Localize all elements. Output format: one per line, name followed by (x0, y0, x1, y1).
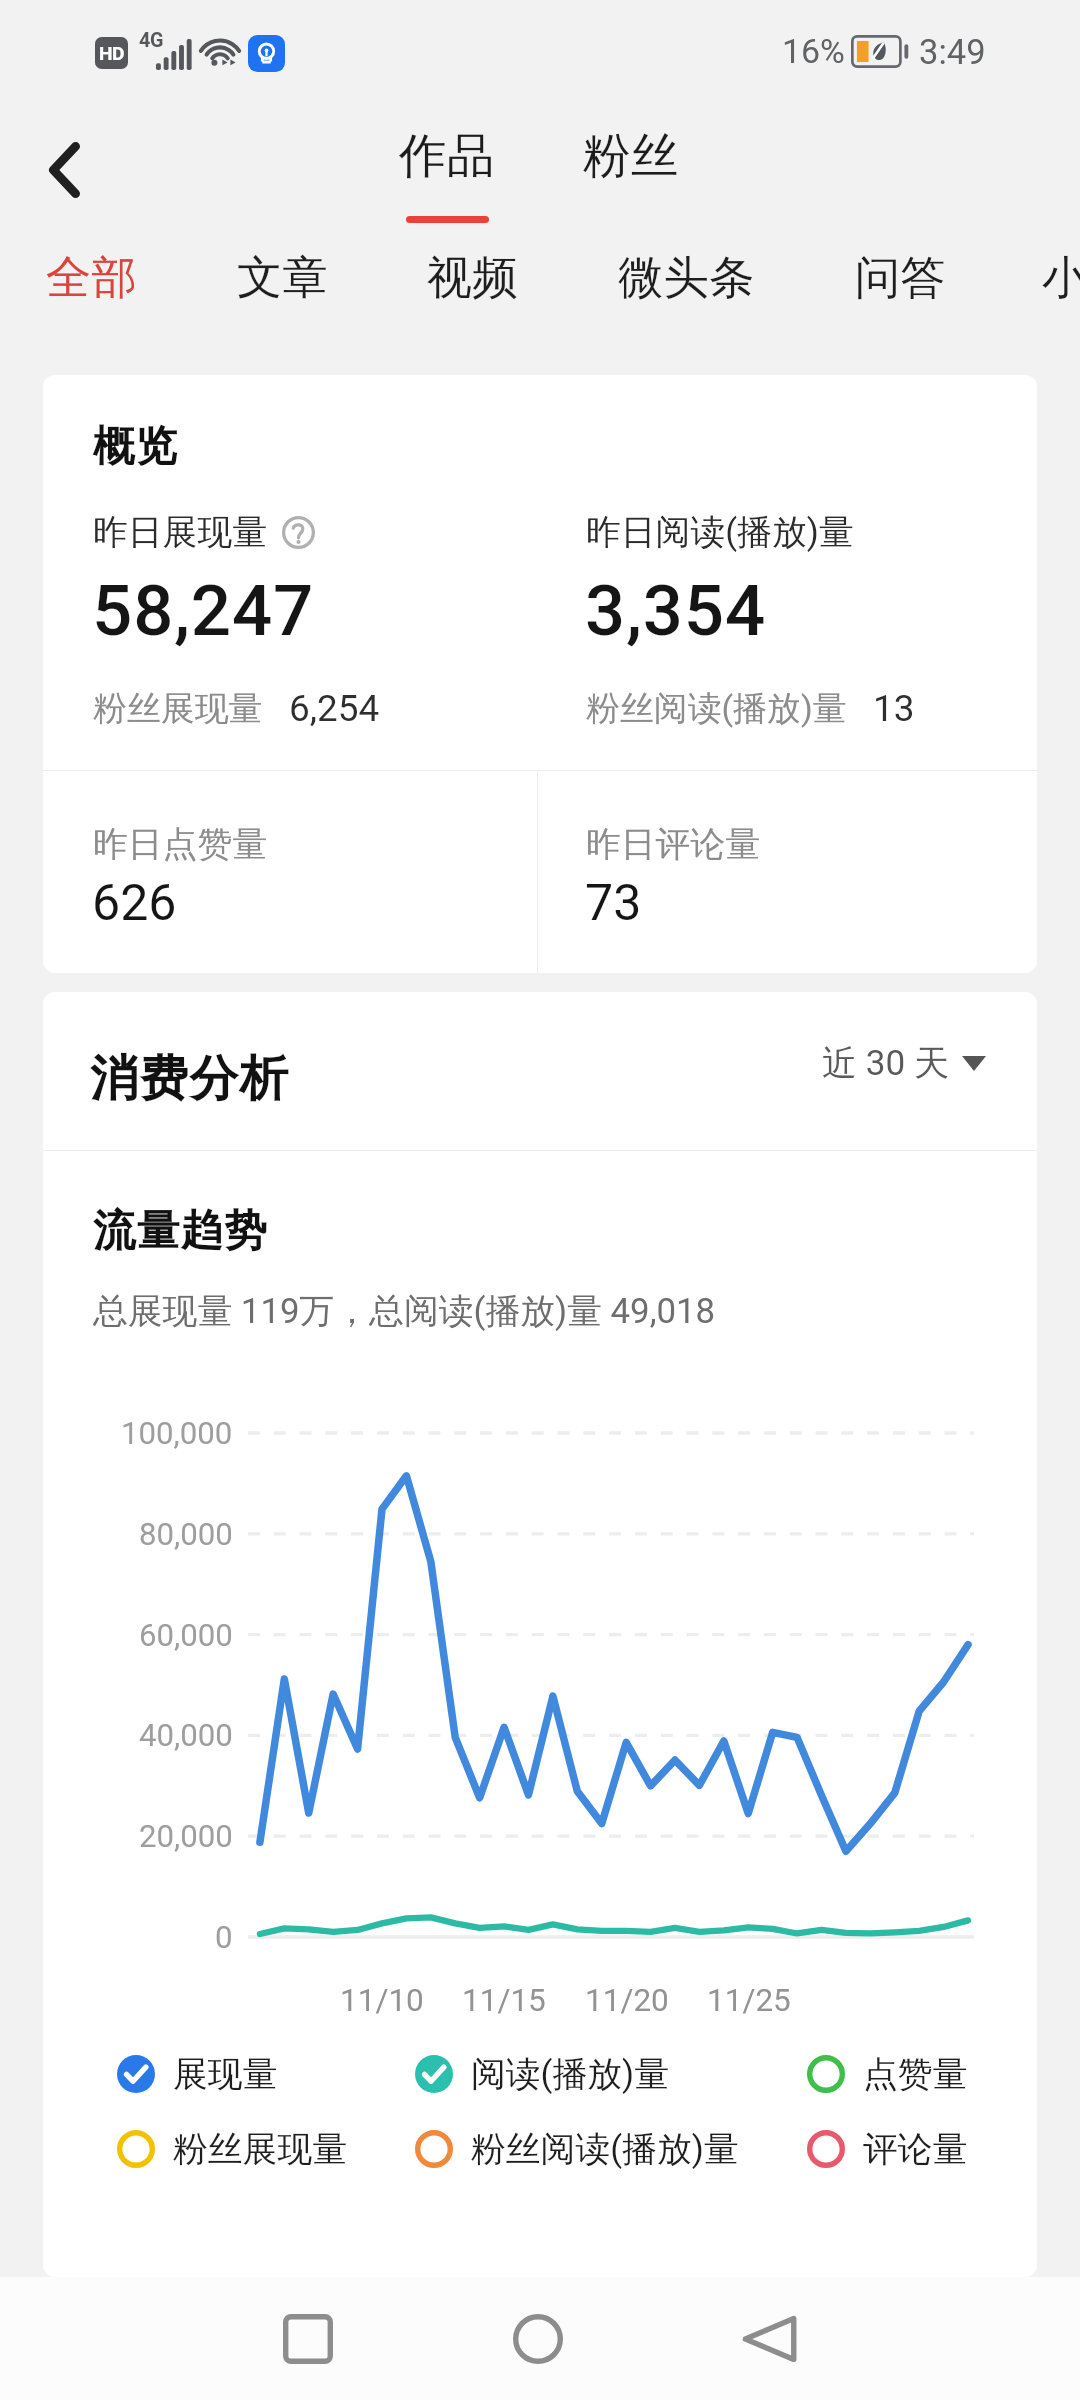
staticText: 阅读(播放)量 (471, 2052, 670, 2096)
button[interactable]: What is impressions? (282, 516, 315, 549)
button[interactable]: 全部 (2, 228, 182, 327)
button[interactable]: 展现量 (117, 2035, 278, 2113)
staticText: 作品 (399, 126, 495, 186)
staticText: 昨日点赞量 (93, 822, 267, 866)
button[interactable]: 近 30 天 (822, 1041, 986, 1085)
staticText: 粉丝 (583, 126, 679, 186)
staticText: 粉丝阅读(播放)量 (471, 2127, 739, 2171)
staticText: 小 (1042, 249, 1080, 306)
staticText: 粉丝展现量 (93, 687, 263, 730)
staticText: 11/10 (340, 1982, 424, 2019)
button[interactable]: Home (463, 2277, 613, 2400)
button[interactable]: 小 (975, 228, 1080, 327)
staticText: 11/20 (585, 1982, 669, 2019)
staticText: 6,254 (289, 687, 380, 730)
staticText: 概览 (93, 420, 179, 472)
staticText: 11/15 (462, 1982, 546, 2019)
staticText: HD (99, 42, 124, 65)
button[interactable]: 阅读(播放)量 (415, 2035, 670, 2113)
staticText: 3:49 (919, 32, 986, 72)
button[interactable]: 昨日展现量 58,247 (43, 489, 537, 770)
staticText: 昨日阅读(播放)量 (586, 510, 854, 554)
button[interactable]: 微头条 (596, 228, 776, 327)
button[interactable]: 粉丝 (553, 110, 709, 223)
staticText: 消费分析 (90, 1048, 290, 1109)
staticText: 总展现量 119万，总阅读(播放)量 49,018 (93, 1289, 716, 1333)
staticText: 文章 (237, 249, 329, 306)
button[interactable]: 视频 (383, 228, 563, 327)
button[interactable]: 粉丝阅读(播放)量 (415, 2110, 739, 2188)
staticText: 20,000 (139, 1818, 233, 1855)
button[interactable]: 文章 (193, 228, 373, 327)
staticText: 13 (873, 687, 915, 730)
button[interactable]: 昨日点赞量 626 (43, 770, 537, 973)
staticText: 60,000 (139, 1617, 233, 1654)
staticText: 粉丝阅读(播放)量 (586, 687, 847, 730)
staticText: 100,000 (121, 1415, 233, 1452)
staticText: 4G (139, 29, 164, 52)
button[interactable]: 昨日阅读(播放)量 3,354 (538, 489, 1032, 770)
staticText: 80,000 (139, 1516, 233, 1553)
staticText: 3,354 (585, 569, 767, 652)
button[interactable]: Back (13, 119, 115, 221)
staticText: 626 (92, 874, 177, 933)
staticText: 微头条 (618, 249, 755, 306)
staticText: 40,000 (139, 1717, 233, 1754)
staticText: 0 (215, 1919, 233, 1956)
staticText: 73 (585, 874, 642, 933)
button[interactable]: 问答 (811, 228, 991, 327)
staticText: 16% (782, 32, 845, 72)
staticText: 点赞量 (863, 2052, 968, 2096)
button[interactable]: Back (693, 2277, 843, 2400)
button[interactable]: 作品 (369, 110, 525, 223)
staticText: 流量趋势 (93, 1204, 269, 1258)
staticText: 粉丝展现量 (173, 2127, 347, 2171)
button[interactable]: Recent apps (233, 2277, 383, 2400)
staticText: 视频 (427, 249, 519, 306)
staticText: 11/25 (707, 1982, 791, 2019)
staticText: 全部 (46, 249, 138, 306)
staticText: 展现量 (173, 2052, 278, 2096)
staticText: 近 30 天 (822, 1041, 950, 1085)
staticText: 昨日展现量 (93, 510, 267, 554)
button[interactable]: 粉丝展现量 (117, 2110, 347, 2188)
button[interactable]: 评论量 (807, 2110, 968, 2188)
staticText: 评论量 (863, 2127, 968, 2171)
staticText: 58,247 (92, 569, 315, 652)
button[interactable]: 昨日评论量 73 (538, 770, 1032, 973)
button[interactable]: 点赞量 (807, 2035, 968, 2113)
staticText: 昨日评论量 (586, 822, 760, 866)
staticText: 问答 (855, 249, 947, 306)
